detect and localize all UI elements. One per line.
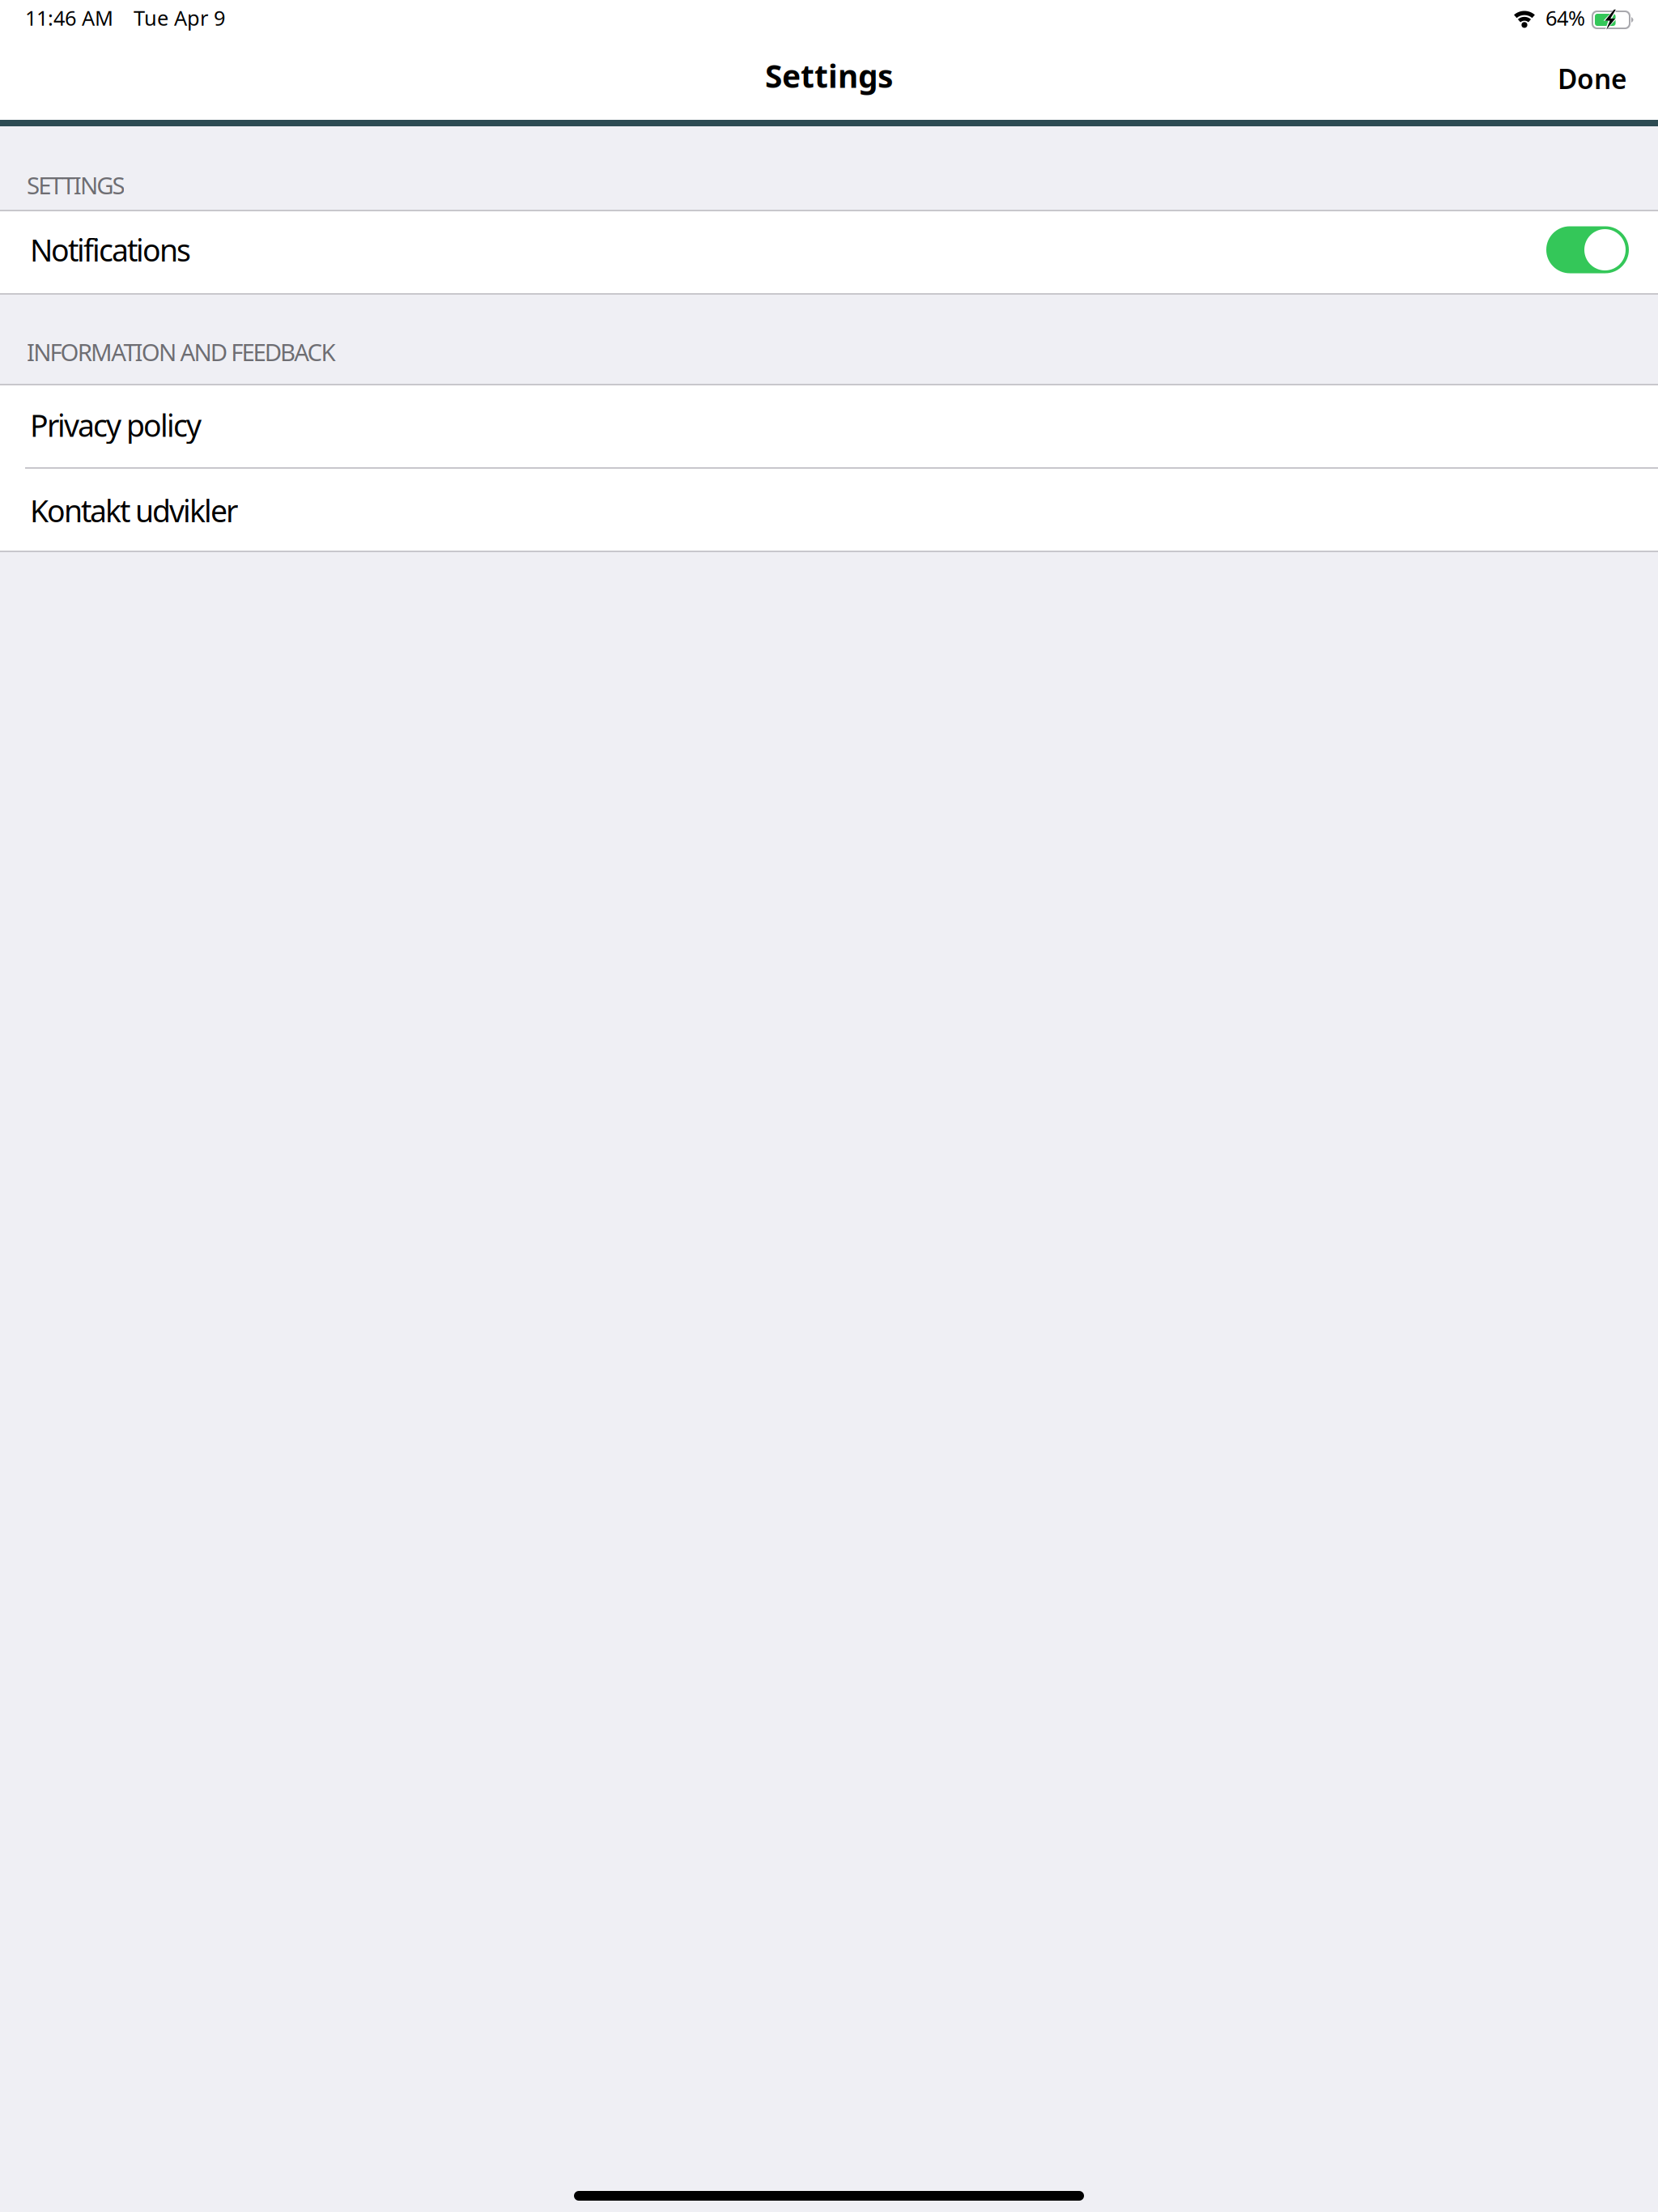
- staticText: 64%: [1545, 4, 1585, 31]
- staticText: 11:46 AM: [25, 4, 113, 31]
- staticText: Privacy policy: [30, 405, 202, 445]
- staticText: Tue Apr 9: [134, 4, 225, 31]
- staticText: Kontakt udvikler: [30, 490, 238, 531]
- button[interactable]: Notifications: [0, 211, 1658, 293]
- staticText: SETTINGS: [27, 169, 125, 201]
- button[interactable]: Kontakt udvikler: [0, 469, 1658, 552]
- staticText: Done: [1558, 61, 1627, 97]
- staticText: Settings: [765, 55, 893, 96]
- staticText: Notifications: [30, 230, 191, 270]
- staticText: INFORMATION AND FEEDBACK: [27, 336, 336, 368]
- button[interactable]: Privacy policy: [0, 385, 1658, 469]
- button[interactable]: Done: [1546, 51, 1639, 111]
